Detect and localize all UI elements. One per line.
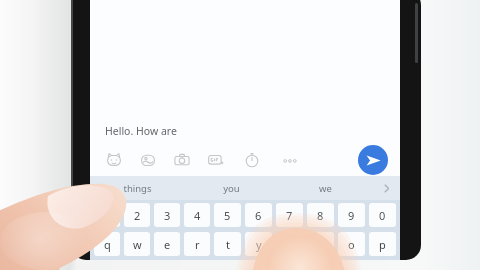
staticText: 7 [286,208,293,223]
button[interactable]: you [184,176,278,200]
button[interactable]: e [154,232,180,256]
button[interactable]: Hello. How are [90,118,400,144]
button[interactable]: q [94,232,120,256]
staticText: things [123,182,152,195]
button[interactable]: 8 [307,203,334,227]
button[interactable]: GIF [205,149,227,171]
button[interactable]: Timer [241,149,263,171]
staticText: o [348,237,355,252]
staticText: t [226,237,230,252]
staticText: 5 [224,208,231,223]
button[interactable]: 3 [154,203,180,227]
button[interactable]: we [278,176,372,200]
staticText: 0 [379,208,386,223]
staticText: 3 [164,208,171,223]
button[interactable]: 0 [369,203,396,227]
staticText: e [164,237,171,252]
staticText: we [319,182,332,195]
button[interactable]: w [124,232,150,256]
staticText: p [379,237,386,252]
staticText: 9 [348,208,355,223]
button[interactable]: u [276,232,303,256]
button[interactable]: things [90,176,184,200]
button[interactable]: 1 [94,203,120,227]
button[interactable]: Camera [171,149,193,171]
button[interactable]: Send [358,145,388,175]
button[interactable]: 6 [245,203,272,227]
button[interactable]: y [245,232,272,256]
staticText: 4 [194,208,201,223]
staticText: 2 [134,208,141,223]
staticText: r [195,237,200,252]
staticText: 6 [255,208,262,223]
staticText: w [133,237,142,252]
button[interactable]: Stickers [103,149,125,171]
button[interactable]: r [184,232,210,256]
button[interactable]: 4 [184,203,210,227]
button[interactable]: i [307,232,334,256]
button[interactable]: 7 [276,203,303,227]
button[interactable]: t [214,232,241,256]
staticText: you [223,182,240,195]
staticText: u [286,237,293,252]
button[interactable]: 2 [124,203,150,227]
button[interactable]: 5 [214,203,241,227]
staticText: Hello. How are [105,124,177,138]
staticText: 1 [104,208,111,223]
staticText: q [104,237,111,252]
staticText: 8 [317,208,324,223]
staticText: y [256,237,262,252]
button[interactable]: 9 [338,203,365,227]
button[interactable]: More suggestions [372,176,400,200]
button[interactable]: More options [279,149,301,171]
button[interactable]: o [338,232,365,256]
button[interactable]: Emoji [137,149,159,171]
button[interactable]: p [369,232,396,256]
